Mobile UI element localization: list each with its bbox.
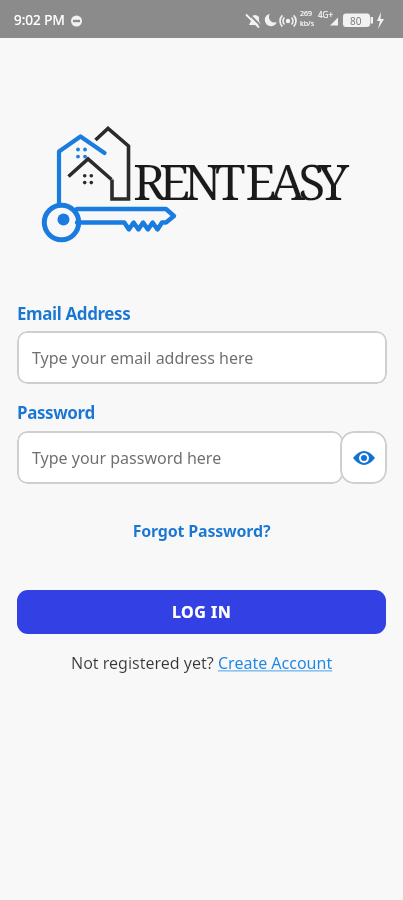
staticText: Type your password here	[32, 447, 222, 469]
staticText: kb/s	[300, 19, 314, 29]
staticText: 4G+	[318, 9, 333, 20]
staticText: 80	[350, 14, 362, 28]
button[interactable]: Type your password here	[17, 431, 343, 484]
staticText: Email Address	[17, 302, 131, 325]
button[interactable]: LOG IN	[17, 590, 386, 634]
staticText: 9:02 PM	[14, 11, 65, 29]
button[interactable]	[340, 431, 387, 484]
staticText: Password	[17, 401, 95, 424]
button[interactable]: Type your email address here	[17, 331, 387, 384]
staticText: Type your email address here	[32, 347, 254, 369]
button[interactable]: Forgot Password?	[0, 520, 403, 542]
staticText: 269	[300, 9, 313, 19]
staticText: LOG IN	[172, 601, 232, 623]
staticText: Not registered yet?	[71, 652, 218, 674]
button[interactable]: Create Account	[218, 652, 333, 674]
staticText: RENT EASY	[133, 147, 343, 215]
